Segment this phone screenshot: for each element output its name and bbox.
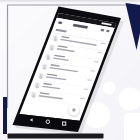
button[interactable]: SMS Plus app — [0, 0, 140, 140]
